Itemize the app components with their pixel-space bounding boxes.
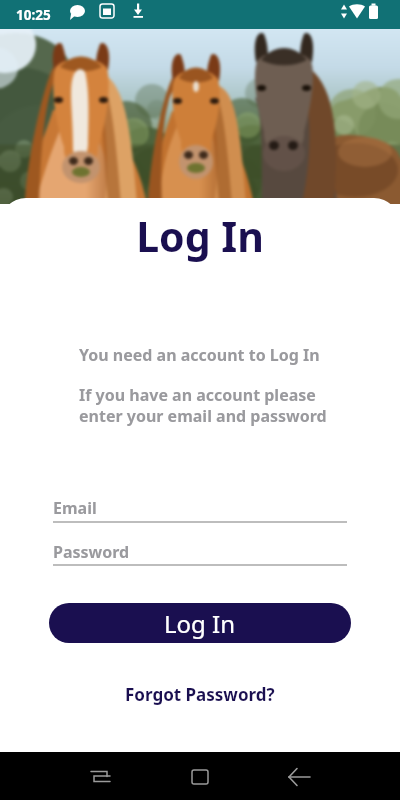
staticText: If you have an account please enter your… <box>79 384 327 427</box>
button[interactable]: Forgot Password? <box>119 680 281 709</box>
staticText: Log In <box>164 607 236 640</box>
button[interactable]: Home <box>175 752 225 800</box>
staticText: You need an account to Log In <box>79 344 320 366</box>
staticText: 10:25 <box>16 6 51 24</box>
button[interactable]: Back <box>275 752 325 800</box>
button[interactable]: Email <box>53 497 97 519</box>
button[interactable]: Log In <box>49 603 351 643</box>
button[interactable]: Recent apps <box>75 752 125 800</box>
button[interactable]: Password <box>53 541 130 563</box>
staticText: Log In <box>0 208 400 264</box>
